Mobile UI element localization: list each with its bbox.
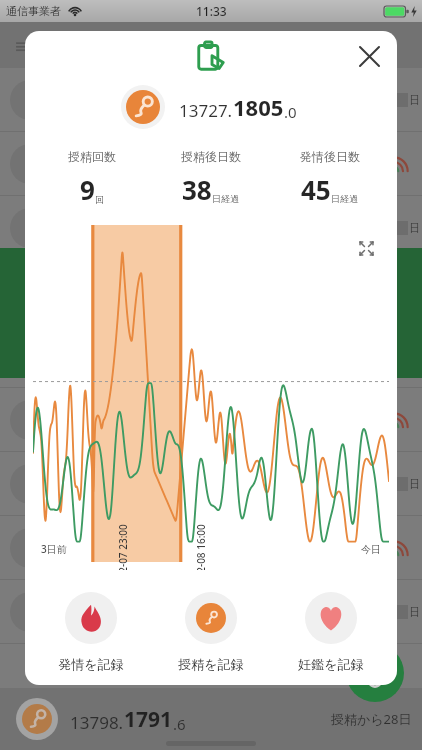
staticText: 38: [182, 172, 212, 207]
staticText: 日: [409, 605, 420, 619]
staticText: 45: [301, 172, 331, 207]
staticText: 日: [409, 477, 420, 491]
staticText: 今日: [361, 543, 381, 556]
staticText: 13798.: [70, 711, 124, 734]
staticText: 日: [409, 221, 420, 235]
button[interactable]: 妊鑑を記録: [271, 586, 391, 678]
staticText: 授精回数: [68, 149, 116, 164]
staticText: 9: [80, 172, 95, 207]
button[interactable]: Close: [349, 36, 389, 76]
staticText: 妊鑑を記録: [298, 656, 364, 672]
staticText: 回: [95, 194, 104, 205]
button[interactable]: Add record: [346, 644, 404, 702]
staticText: .6: [173, 714, 186, 734]
button[interactable]: 授精を記録: [151, 586, 271, 678]
staticText: 3日前: [41, 542, 67, 556]
staticText: 日経過: [331, 193, 358, 204]
staticText: 11:33: [196, 3, 227, 19]
staticText: 日経過: [212, 193, 239, 204]
staticText: ≡: [14, 34, 31, 57]
staticText: 通信事業者: [6, 4, 61, 18]
staticText: 日: [409, 93, 420, 107]
staticText: 授精から28日: [331, 710, 412, 728]
staticText: 12-08 16:00: [193, 523, 207, 570]
staticText: 1805: [233, 92, 284, 122]
staticText: 12-07 23:00: [115, 523, 129, 570]
staticText: 授精後日数: [181, 149, 241, 164]
staticText: 13727.: [179, 99, 233, 122]
staticText: 授精を記録: [178, 656, 244, 672]
button[interactable]: 発情を記録: [31, 586, 151, 678]
button[interactable]: Expand chart: [353, 235, 379, 261]
staticText: .0: [284, 102, 297, 122]
staticText: 発情後日数: [300, 149, 360, 164]
staticText: 発情を記録: [58, 656, 124, 672]
staticText: 1791: [124, 705, 173, 734]
